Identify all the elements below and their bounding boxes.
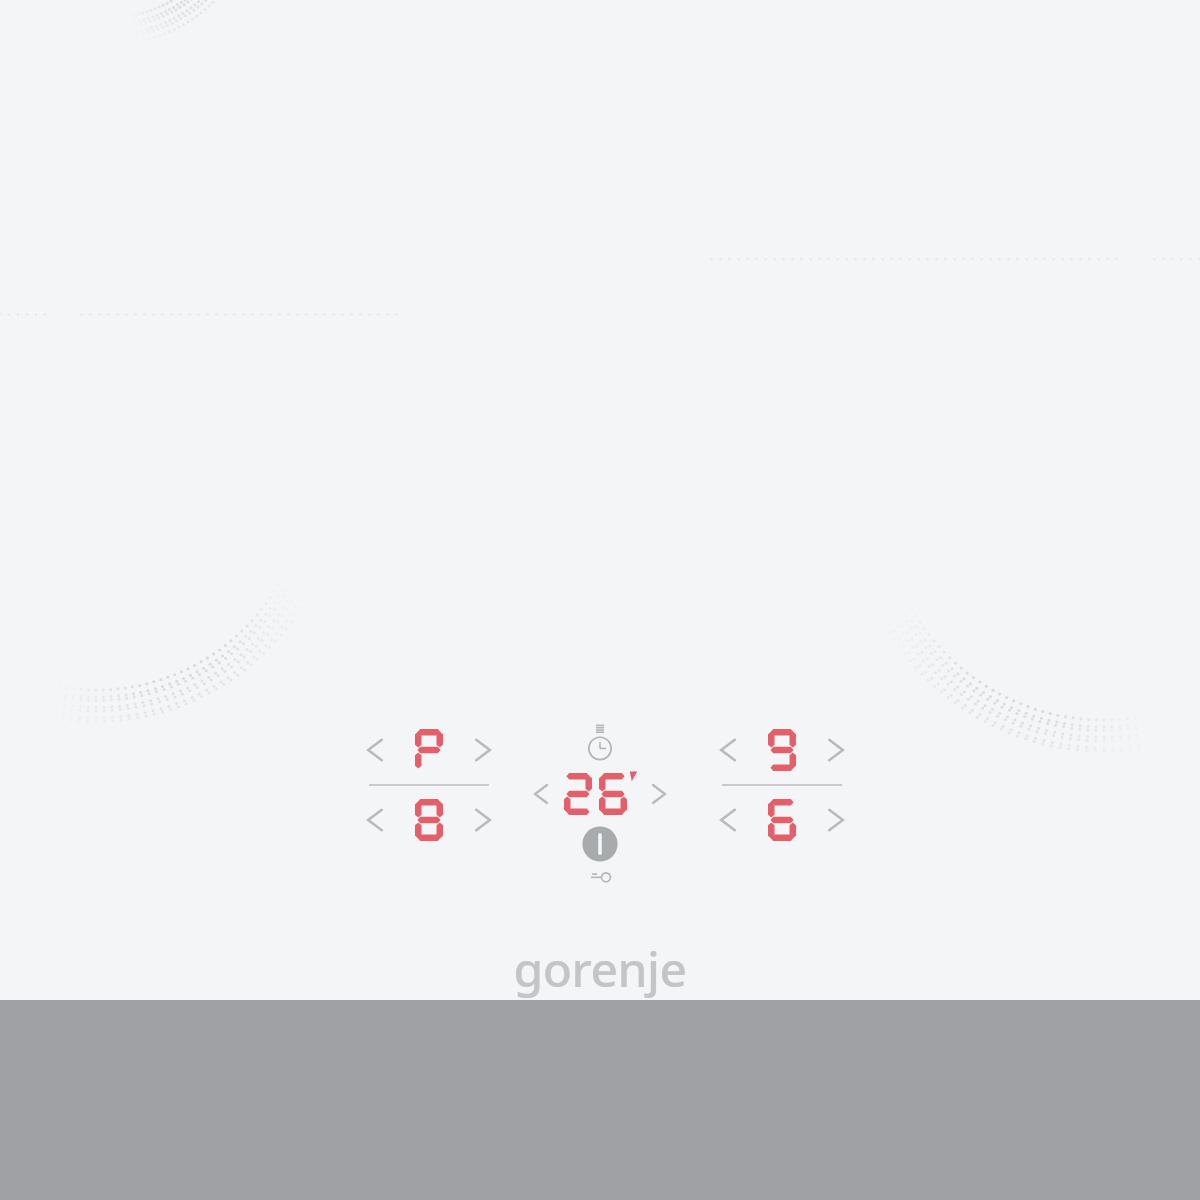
button[interactable]: Child lock (583, 868, 617, 886)
button[interactable] (562, 766, 638, 822)
button[interactable]: Timer (580, 722, 620, 764)
button[interactable]: Increase timer (644, 774, 674, 814)
button[interactable] (406, 722, 452, 778)
button[interactable]: Decrease timer (526, 774, 556, 814)
button[interactable]: Decrease front left zone (358, 728, 392, 772)
button[interactable]: Increase front right zone (819, 728, 853, 772)
button[interactable]: Increase rear left zone (466, 798, 500, 842)
button[interactable] (406, 792, 452, 848)
button[interactable] (759, 722, 805, 778)
button[interactable]: Decrease rear left zone (358, 798, 392, 842)
button[interactable]: Power on off (578, 822, 622, 866)
staticText: gorenje (513, 936, 687, 1001)
button[interactable]: Increase rear right zone (819, 798, 853, 842)
button[interactable]: Decrease rear right zone (711, 798, 745, 842)
button[interactable]: Increase front left zone (466, 728, 500, 772)
button[interactable] (759, 792, 805, 848)
button[interactable]: Decrease front right zone (711, 728, 745, 772)
